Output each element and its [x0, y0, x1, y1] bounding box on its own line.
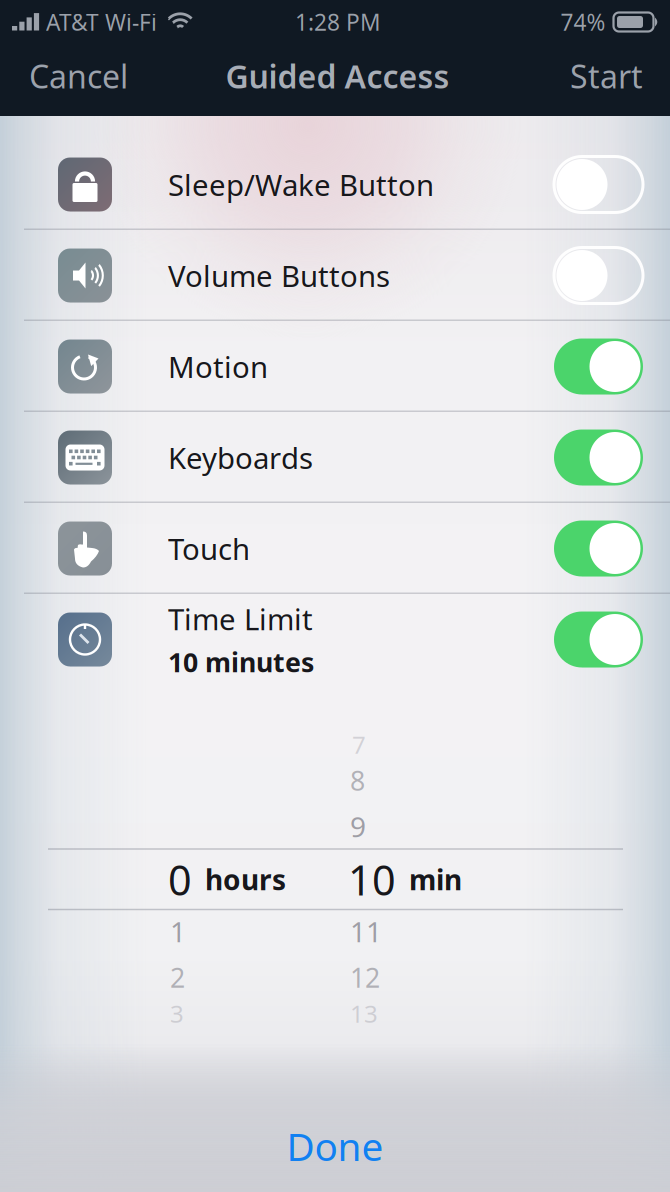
staticText: Volume Buttons: [168, 256, 390, 295]
staticText: 1:28 PM: [295, 7, 381, 37]
staticText: 12: [350, 960, 380, 995]
staticText: 74%: [560, 7, 605, 37]
staticText: min: [409, 861, 462, 898]
button[interactable]: Keyboards: [0, 412, 670, 503]
staticText: Start: [570, 55, 643, 97]
staticText: Motion: [168, 347, 268, 386]
staticText: hours: [205, 861, 286, 898]
staticText: Time Limit: [168, 599, 313, 638]
staticText: 1: [170, 913, 186, 950]
staticText: Done: [286, 1120, 383, 1172]
button[interactable]: Motion: [0, 321, 670, 412]
staticText: 0: [168, 852, 192, 907]
button[interactable]: Start: [543, 44, 670, 108]
button[interactable]: Touch: [0, 503, 670, 594]
staticText: Cancel: [29, 55, 128, 97]
staticText: 8: [350, 763, 365, 798]
staticText: 2: [170, 960, 185, 995]
staticText: Touch: [168, 529, 250, 568]
button[interactable]: Done: [0, 1100, 670, 1192]
staticText: Sleep/Wake Button: [168, 165, 434, 204]
staticText: 11: [350, 913, 382, 950]
staticText: 3: [170, 998, 184, 1029]
staticText: 13: [350, 998, 378, 1029]
staticText: 10 minutes: [168, 644, 314, 680]
staticText: Keyboards: [168, 438, 313, 477]
button[interactable]: Time Limit: [0, 594, 670, 685]
staticText: 10: [348, 852, 396, 907]
button[interactable]: Cancel: [0, 44, 157, 108]
staticText: 7: [352, 729, 366, 760]
staticText: 9: [350, 808, 366, 845]
staticText: Guided Access: [225, 55, 449, 97]
staticText: AT&T Wi-Fi: [46, 7, 157, 37]
button[interactable]: Sleep/Wake Button: [0, 139, 670, 230]
button[interactable]: Volume Buttons: [0, 230, 670, 321]
